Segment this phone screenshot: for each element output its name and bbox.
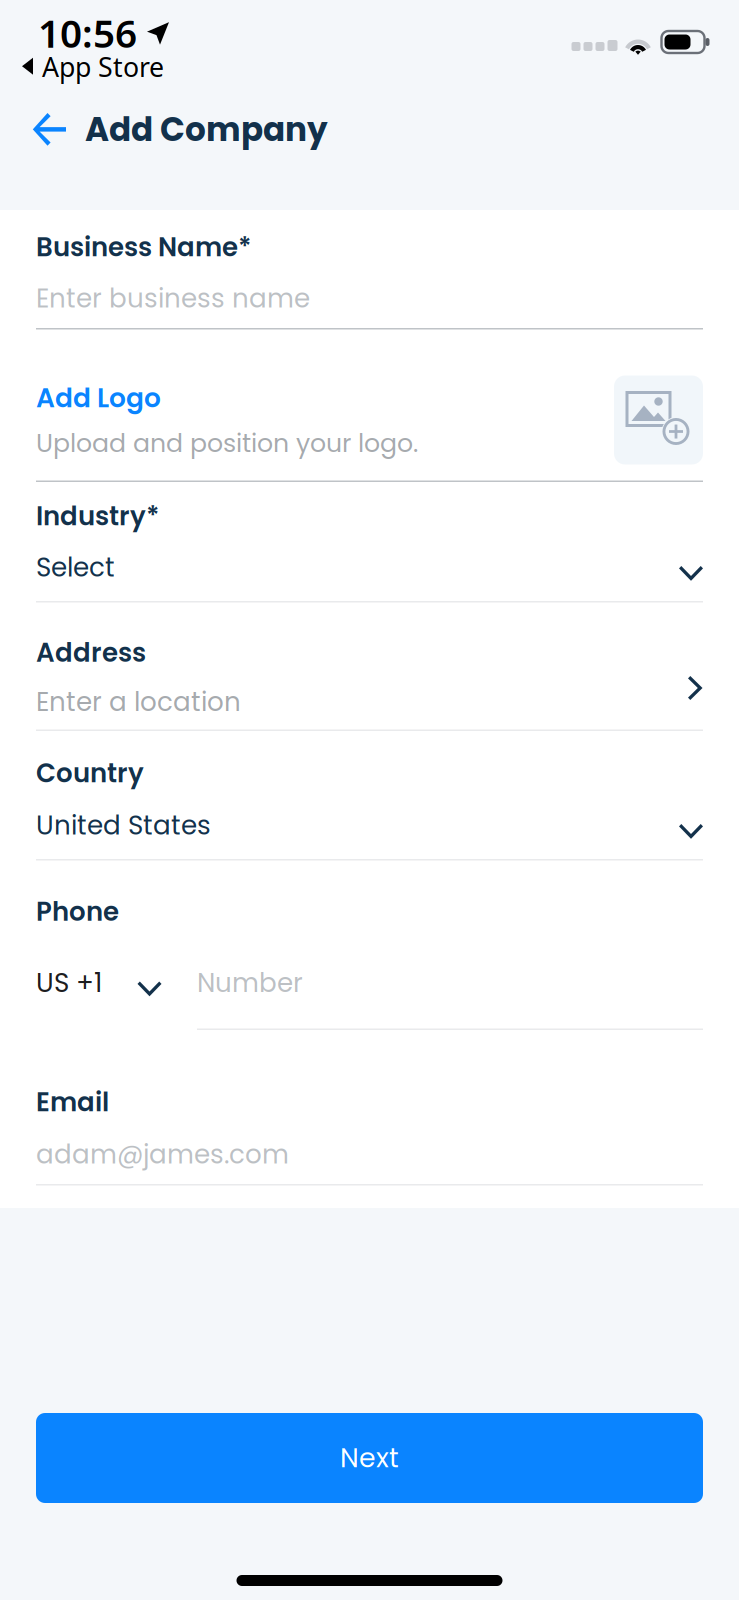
- staticText: Address: [36, 634, 146, 671]
- button[interactable]: Select: [36, 549, 703, 585]
- staticText: adam@james.com: [36, 1136, 289, 1173]
- staticText: Phone: [36, 893, 119, 930]
- staticText: Business Name*: [36, 229, 251, 265]
- staticText: Enter business name: [36, 280, 310, 317]
- staticText: Select: [36, 549, 115, 586]
- button[interactable]: Next: [36, 1413, 703, 1503]
- button[interactable]: US +1: [36, 964, 197, 1000]
- staticText: Email: [36, 1084, 109, 1120]
- staticText: Add Logo: [36, 379, 161, 416]
- staticText: Add Company: [85, 107, 328, 152]
- button[interactable]: Add logo: [614, 375, 703, 464]
- button[interactable]: Address: [36, 634, 703, 719]
- staticText: Industry*: [36, 498, 159, 534]
- staticText: Number: [197, 964, 303, 1001]
- staticText: United States: [36, 807, 211, 844]
- button[interactable]: United States: [36, 807, 703, 843]
- staticText: Enter a location: [36, 683, 241, 720]
- staticText: 10:56: [38, 7, 137, 58]
- staticText: App Store: [42, 49, 164, 84]
- staticText: US +1: [36, 964, 102, 1001]
- staticText: Country: [36, 755, 144, 791]
- button[interactable]: Back: [17, 101, 82, 158]
- staticText: Next: [340, 1439, 399, 1477]
- staticText: Upload and position your logo.: [36, 425, 418, 461]
